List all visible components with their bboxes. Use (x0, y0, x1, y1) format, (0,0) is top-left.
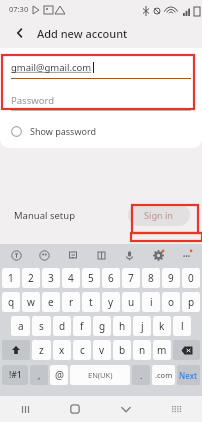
staticText: 1 (8, 271, 14, 285)
button[interactable]: h (113, 316, 131, 336)
button[interactable]: g (93, 316, 111, 336)
button[interactable]: 3 (42, 268, 60, 288)
button[interactable]: k (153, 316, 171, 336)
staticText: m (157, 343, 167, 357)
staticText: 2 (28, 271, 34, 285)
button[interactable]: 2 (22, 268, 40, 288)
button[interactable]: Shift (2, 340, 30, 360)
button[interactable]: Keyboard settings (150, 247, 166, 263)
button[interactable]: !#1 (2, 365, 28, 385)
button[interactable]: Backspace (173, 340, 200, 360)
button[interactable]: e (42, 292, 60, 312)
button[interactable]: 9 (162, 268, 180, 288)
staticText: h (119, 319, 126, 333)
button[interactable]: s (32, 316, 51, 336)
button[interactable]: Password (11, 94, 191, 110)
staticText: 8 (148, 271, 154, 285)
staticText: u (128, 295, 135, 309)
button[interactable]: 7 (122, 268, 140, 288)
button[interactable]: b (113, 340, 131, 360)
button[interactable]: v (93, 340, 111, 360)
button[interactable]: q (2, 292, 20, 312)
button[interactable]: a (11, 316, 30, 336)
staticText: !#1 (9, 369, 22, 381)
button[interactable]: i (142, 292, 160, 312)
staticText: . (140, 369, 143, 381)
button[interactable]: m (153, 340, 171, 360)
button[interactable]: Sign in (128, 204, 190, 226)
button[interactable]: . (132, 365, 150, 385)
staticText: o (168, 295, 175, 309)
button[interactable]: Manual setup (12, 206, 77, 225)
staticText: 4 (68, 271, 74, 285)
button[interactable]: Back (10, 23, 30, 43)
button[interactable]: 6 (102, 268, 120, 288)
button[interactable]: Translate (8, 247, 24, 263)
staticText: b (119, 343, 126, 357)
button[interactable]: w (22, 292, 40, 312)
staticText: f (80, 319, 84, 333)
button[interactable]: Keyboard layout (151, 396, 202, 422)
staticText: e (48, 295, 54, 309)
staticText: p (188, 295, 195, 309)
button[interactable]: z (32, 340, 51, 360)
button[interactable]: .com (152, 365, 175, 385)
button[interactable]: l (173, 316, 191, 336)
button[interactable]: p (182, 292, 200, 312)
button[interactable]: 5 (82, 268, 100, 288)
button[interactable]: More options (178, 247, 194, 263)
button[interactable]: r (62, 292, 80, 312)
button[interactable]: 0 (182, 268, 200, 288)
staticText: l (181, 319, 184, 333)
button[interactable]: n (133, 340, 151, 360)
staticText: 07:30 (9, 4, 29, 14)
button[interactable]: 4 (62, 268, 80, 288)
staticText: r (69, 295, 74, 309)
staticText: j (141, 319, 144, 333)
button[interactable]: Clipboard (93, 247, 109, 263)
staticText: g (99, 319, 106, 333)
button[interactable]: @ (50, 365, 68, 385)
staticText: Show password (30, 125, 96, 137)
staticText: 0 (188, 271, 194, 285)
button[interactable]: d (53, 316, 71, 336)
button[interactable]: Voice input (121, 247, 137, 263)
staticText: x (59, 343, 65, 357)
staticText: 9 (168, 271, 174, 285)
staticText: Manual setup (14, 209, 75, 222)
staticText: q (8, 295, 15, 309)
staticText: Add new account (37, 26, 128, 41)
button[interactable]: Handwriting (65, 247, 81, 263)
staticText: .com (155, 370, 173, 380)
button[interactable]: Hide keyboard (100, 396, 151, 422)
button[interactable]: x (53, 340, 71, 360)
staticText: s (39, 319, 44, 333)
staticText: @ (55, 368, 64, 382)
button[interactable]: Show password (11, 122, 191, 140)
staticText: c (80, 343, 85, 357)
button[interactable]: 1 (2, 268, 20, 288)
staticText: 6 (108, 271, 114, 285)
staticText: a (18, 319, 24, 333)
button[interactable]: y (102, 292, 120, 312)
button[interactable]: , (30, 365, 48, 385)
staticText: Password (11, 94, 54, 107)
button[interactable]: c (73, 340, 91, 360)
button[interactable]: Next (177, 365, 200, 385)
button[interactable]: f (73, 316, 91, 336)
button[interactable]: u (122, 292, 140, 312)
button[interactable]: EN(UK) (70, 365, 130, 385)
button[interactable]: t (82, 292, 100, 312)
button[interactable]: o (162, 292, 180, 312)
staticText: EN(UK) (88, 370, 113, 380)
button[interactable]: gmail@gmail.com (11, 61, 191, 78)
staticText: v (99, 343, 105, 357)
staticText: y (108, 295, 114, 309)
staticText: gmail@gmail.com (11, 61, 92, 74)
button[interactable]: j (133, 316, 151, 336)
staticText: Sign in (144, 209, 174, 221)
button[interactable]: Recents (0, 396, 50, 422)
button[interactable]: Home (50, 396, 100, 422)
button[interactable]: Stickers (36, 247, 52, 263)
button[interactable]: 8 (142, 268, 160, 288)
